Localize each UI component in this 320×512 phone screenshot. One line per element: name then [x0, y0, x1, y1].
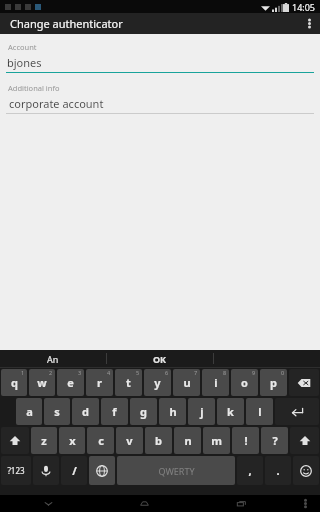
staticText: k	[227, 404, 234, 419]
button[interactable]: Additional info	[0, 83, 320, 114]
staticText: s	[54, 404, 60, 419]
staticText: i	[214, 375, 218, 390]
staticText: 14:05	[292, 1, 316, 13]
button[interactable]: 1	[1, 369, 27, 396]
button[interactable]: 0	[260, 369, 287, 396]
staticText: /	[72, 463, 77, 478]
staticText: bjones	[7, 55, 42, 70]
button[interactable]: ,	[237, 456, 263, 485]
staticText: z	[41, 433, 47, 448]
button[interactable]: Change language	[89, 456, 115, 485]
button[interactable]: a	[16, 398, 42, 425]
button[interactable]: l	[246, 398, 273, 425]
staticText: 3	[78, 369, 82, 376]
button[interactable]: Emoji	[293, 456, 319, 485]
staticText: QWERTY	[158, 465, 195, 477]
button[interactable]: 5	[115, 369, 142, 396]
button[interactable]: k	[217, 398, 244, 425]
staticText: f	[112, 404, 117, 419]
button[interactable]: ?	[261, 427, 288, 454]
staticText: h	[169, 404, 177, 419]
button[interactable]: n	[174, 427, 201, 454]
staticText: q	[11, 375, 18, 390]
staticText: An	[47, 353, 59, 365]
staticText: ?123	[7, 465, 25, 476]
button[interactable]: !	[232, 427, 259, 454]
staticText: x	[69, 433, 76, 448]
button[interactable]: Menu	[290, 495, 320, 512]
button[interactable]: Account	[0, 42, 320, 73]
button[interactable]: d	[72, 398, 99, 425]
button[interactable]: f	[101, 398, 128, 425]
staticText: 4	[107, 369, 111, 376]
staticText: u	[183, 375, 191, 390]
staticText: d	[82, 404, 89, 419]
button[interactable]: Shift	[1, 427, 29, 454]
button[interactable]: z	[31, 427, 57, 454]
button[interactable]: QWERTY	[117, 456, 235, 485]
staticText: 9	[252, 369, 256, 376]
staticText: w	[37, 375, 47, 390]
staticText: Account	[8, 42, 37, 52]
button[interactable]: Voice input	[33, 456, 59, 485]
staticText: 1	[21, 369, 25, 376]
staticText: j	[200, 404, 204, 419]
staticText: t	[126, 375, 131, 390]
staticText: m	[211, 433, 222, 448]
staticText: n	[184, 433, 192, 448]
staticText: a	[26, 404, 33, 419]
button[interactable]: g	[130, 398, 157, 425]
button[interactable]: x	[59, 427, 85, 454]
staticText: Additional info	[8, 83, 60, 93]
button[interactable]: v	[116, 427, 143, 454]
button[interactable]: /	[61, 456, 87, 485]
button[interactable]: Shift	[290, 427, 319, 454]
button[interactable]: 9	[231, 369, 258, 396]
staticText: v	[126, 433, 133, 448]
button[interactable]: ?123	[1, 456, 31, 485]
staticText: r	[97, 375, 102, 390]
button[interactable]: .	[265, 456, 291, 485]
staticText: y	[154, 375, 161, 390]
staticText: Change authenticator	[10, 16, 123, 31]
staticText: corporate account	[9, 96, 104, 111]
staticText: o	[241, 375, 248, 390]
button[interactable]: h	[159, 398, 186, 425]
button[interactable]: Home	[96, 495, 193, 512]
button[interactable]: 2	[29, 369, 55, 396]
button[interactable]: 7	[173, 369, 200, 396]
staticText: c	[98, 433, 104, 448]
button[interactable]: 6	[144, 369, 171, 396]
staticText: p	[270, 375, 277, 390]
button[interactable]: Delete	[289, 369, 319, 396]
staticText: 2	[49, 369, 53, 376]
button[interactable]: Enter	[275, 398, 319, 425]
staticText: 6	[165, 369, 169, 376]
staticText: b	[155, 433, 162, 448]
button[interactable]: 4	[86, 369, 113, 396]
button[interactable]: An	[0, 350, 106, 367]
staticText: 8	[223, 369, 227, 376]
button[interactable]: OK	[107, 350, 213, 367]
button[interactable]: Recent apps	[193, 495, 290, 512]
button[interactable]: 3	[57, 369, 84, 396]
button[interactable]: b	[145, 427, 172, 454]
staticText: 7	[194, 369, 198, 376]
button[interactable]: More options	[298, 13, 320, 34]
staticText: .	[276, 463, 280, 478]
staticText: g	[140, 404, 147, 419]
button[interactable]: s	[44, 398, 70, 425]
staticText: ,	[248, 463, 252, 478]
staticText: 0	[281, 369, 285, 376]
button[interactable]: c	[87, 427, 114, 454]
button[interactable]: m	[203, 427, 230, 454]
staticText: !	[244, 433, 248, 448]
staticText: OK	[153, 353, 167, 365]
button[interactable]: j	[188, 398, 215, 425]
staticText: ?	[272, 433, 278, 448]
button[interactable]: 8	[202, 369, 229, 396]
staticText: 5	[136, 369, 140, 376]
staticText: l	[258, 404, 262, 419]
button[interactable]: Hide keyboard	[0, 495, 96, 512]
